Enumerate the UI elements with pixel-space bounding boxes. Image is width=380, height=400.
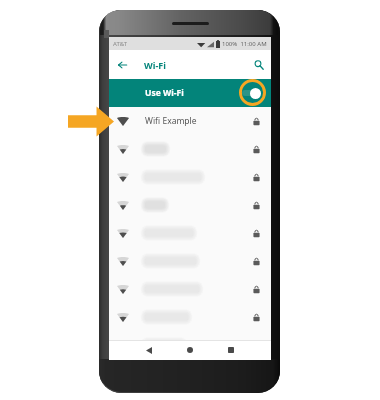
button[interactable] (109, 303, 271, 331)
staticText: Wi-Fi (144, 59, 166, 71)
button[interactable] (109, 219, 271, 247)
button[interactable]: Recent apps (221, 340, 241, 360)
button[interactable]: Search (250, 56, 268, 74)
button[interactable]: Navigate up (113, 56, 131, 74)
button[interactable] (109, 135, 271, 163)
button[interactable]: Back (139, 340, 159, 360)
staticText: AT&T (113, 40, 127, 48)
button[interactable] (109, 247, 271, 275)
button[interactable]: Home (180, 340, 200, 360)
button[interactable] (109, 163, 271, 191)
staticText: Wifi Example (145, 115, 197, 127)
button[interactable] (109, 191, 271, 219)
staticText: Use Wi-Fi (145, 87, 184, 99)
button[interactable] (109, 331, 271, 359)
button[interactable]: Use Wi-Fi (109, 79, 271, 107)
staticText: 100% 11:00 AM (222, 40, 267, 48)
button[interactable]: Wifi Example (109, 107, 271, 135)
button[interactable] (109, 275, 271, 303)
